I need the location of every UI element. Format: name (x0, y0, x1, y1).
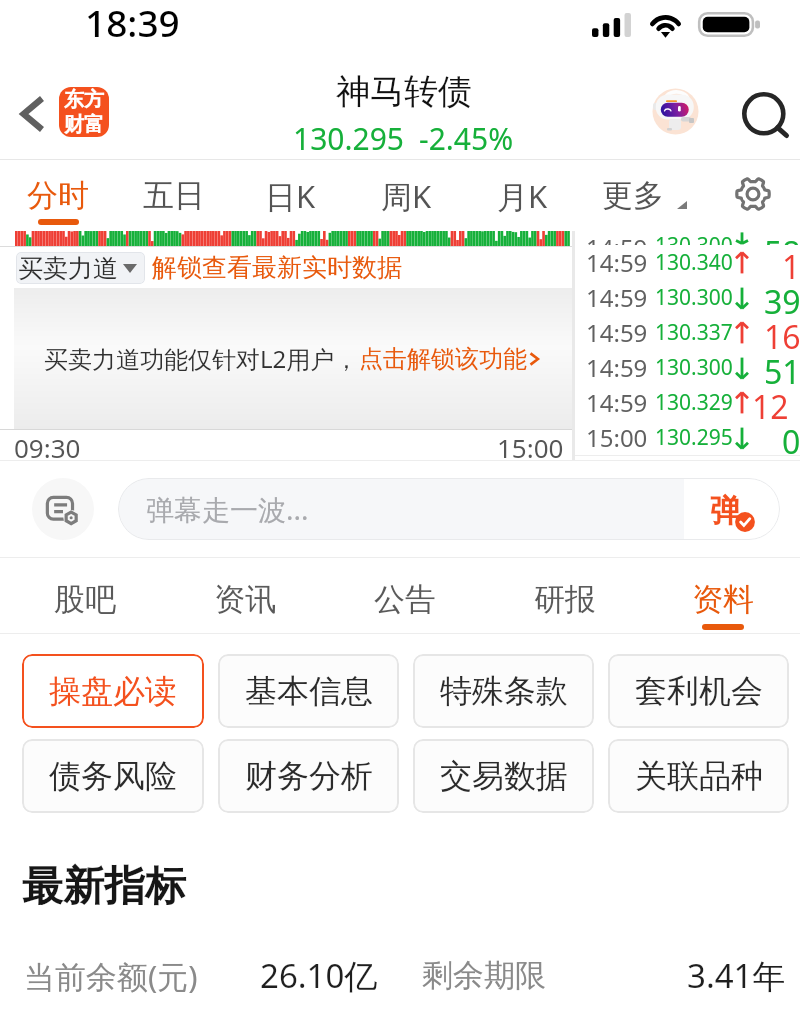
staticText: 财务分析 (245, 756, 373, 796)
staticText: 58 (764, 231, 800, 245)
button[interactable]: 弹幕走一波... (118, 478, 780, 540)
button[interactable]: 特殊条款 (413, 654, 594, 728)
staticText: 14:59 (586, 246, 648, 279)
button[interactable]: 资料 (645, 558, 800, 634)
staticText: 15:00 (586, 421, 648, 454)
staticText: 日K (265, 175, 316, 217)
staticText: 资讯 (214, 580, 276, 619)
staticText: -2.45% (419, 118, 514, 159)
staticText: 16 (764, 315, 800, 350)
staticText: 14:59 (586, 281, 648, 314)
button[interactable]: 研报 (485, 558, 645, 634)
staticText: 当前余额(元) (24, 955, 198, 997)
button[interactable]: 月K (464, 160, 580, 231)
staticText: 更多 (602, 176, 664, 215)
staticText: 买卖力道功能仅针对L2用户， (44, 342, 359, 375)
staticText: 130.337 (655, 318, 733, 347)
staticText: 39 (764, 280, 800, 315)
staticText: 解锁查看最新实时数据 (152, 252, 402, 283)
staticText: 15:00 (497, 430, 564, 460)
staticText: 130.300 (655, 231, 733, 245)
button[interactable]: Danmu settings (32, 478, 94, 540)
staticText: 股吧 (54, 580, 116, 619)
staticText: 130.329 (655, 388, 733, 417)
staticText: 1 (782, 245, 800, 280)
staticText: 弹幕走一波... (146, 490, 309, 528)
button[interactable]: 资讯 (165, 558, 325, 634)
button[interactable]: Back (0, 82, 58, 140)
button[interactable]: 套利机会 (608, 654, 789, 728)
staticText: 130.295 (293, 118, 404, 159)
staticText: 五日 (143, 176, 205, 215)
button[interactable]: AI assistant (649, 85, 705, 141)
button[interactable]: 操盘必读 (22, 654, 204, 728)
button[interactable]: 东方 (59, 87, 109, 137)
button[interactable]: 五日 (116, 160, 232, 231)
staticText: 周K (381, 175, 432, 217)
staticText: 剩余期限 (422, 956, 546, 995)
staticText: 资料 (692, 580, 754, 619)
staticText: 09:30 (14, 430, 81, 460)
staticText: 财富 (64, 112, 104, 137)
button[interactable]: 分时 (0, 160, 116, 231)
staticText: 神马转债 (336, 70, 472, 113)
staticText: 弹 (710, 491, 741, 530)
button[interactable]: 日K (232, 160, 348, 231)
staticText: 操盘必读 (49, 671, 177, 711)
staticText: 月K (497, 175, 548, 217)
button[interactable]: 买卖力道 (18, 252, 137, 284)
staticText: 关联品种 (635, 756, 763, 796)
button[interactable]: 更多 (580, 160, 696, 231)
staticText: 14:59 (586, 351, 648, 384)
button[interactable]: 公告 (325, 558, 485, 634)
staticText: 14:59 (586, 231, 648, 245)
button[interactable]: Search (735, 85, 795, 145)
staticText: 交易数据 (440, 756, 568, 796)
staticText: 东方 (64, 87, 104, 112)
staticText: 0 (782, 420, 800, 455)
staticText: 130.340 (655, 248, 733, 277)
staticText: 分时 (27, 176, 89, 215)
staticText: 公告 (374, 580, 436, 619)
staticText: 51 (764, 350, 800, 385)
button[interactable]: Settings (696, 160, 800, 231)
staticText: 127 (752, 385, 800, 420)
button[interactable]: 财务分析 (218, 739, 399, 813)
staticText: 基本信息 (245, 671, 373, 711)
button[interactable]: 周K (348, 160, 464, 231)
staticText: 债务风险 (49, 756, 177, 796)
button[interactable]: 股吧 (5, 558, 165, 634)
staticText: 130.295 (655, 423, 733, 452)
button[interactable]: 债务风险 (22, 739, 204, 813)
staticText: 130.300 (655, 283, 733, 312)
button[interactable]: 弹 (684, 478, 780, 540)
staticText: 买卖力道 (18, 253, 118, 284)
staticText: 最新指标 (22, 861, 186, 913)
staticText: 特殊条款 (440, 671, 568, 711)
button[interactable]: 关联品种 (608, 739, 789, 813)
staticText: 130.300 (655, 353, 733, 382)
staticText: 3.41年 (687, 953, 786, 998)
staticText: 26.10亿 (260, 953, 378, 998)
staticText: 14:59 (586, 316, 648, 349)
staticText: 14:59 (586, 386, 648, 419)
button[interactable]: 基本信息 (218, 654, 399, 728)
button[interactable]: 交易数据 (413, 739, 594, 813)
staticText: 研报 (534, 580, 596, 619)
staticText: 点击解锁该功能 (359, 344, 527, 374)
staticText: 套利机会 (635, 671, 763, 711)
staticText: 18:39 (85, 0, 180, 47)
